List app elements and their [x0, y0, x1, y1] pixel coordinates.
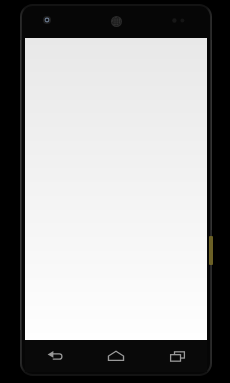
- button[interactable]: Back: [25, 340, 85, 372]
- button[interactable]: Recent apps: [147, 340, 207, 372]
- button[interactable]: Power: [209, 236, 213, 265]
- button[interactable]: Home: [85, 340, 147, 372]
